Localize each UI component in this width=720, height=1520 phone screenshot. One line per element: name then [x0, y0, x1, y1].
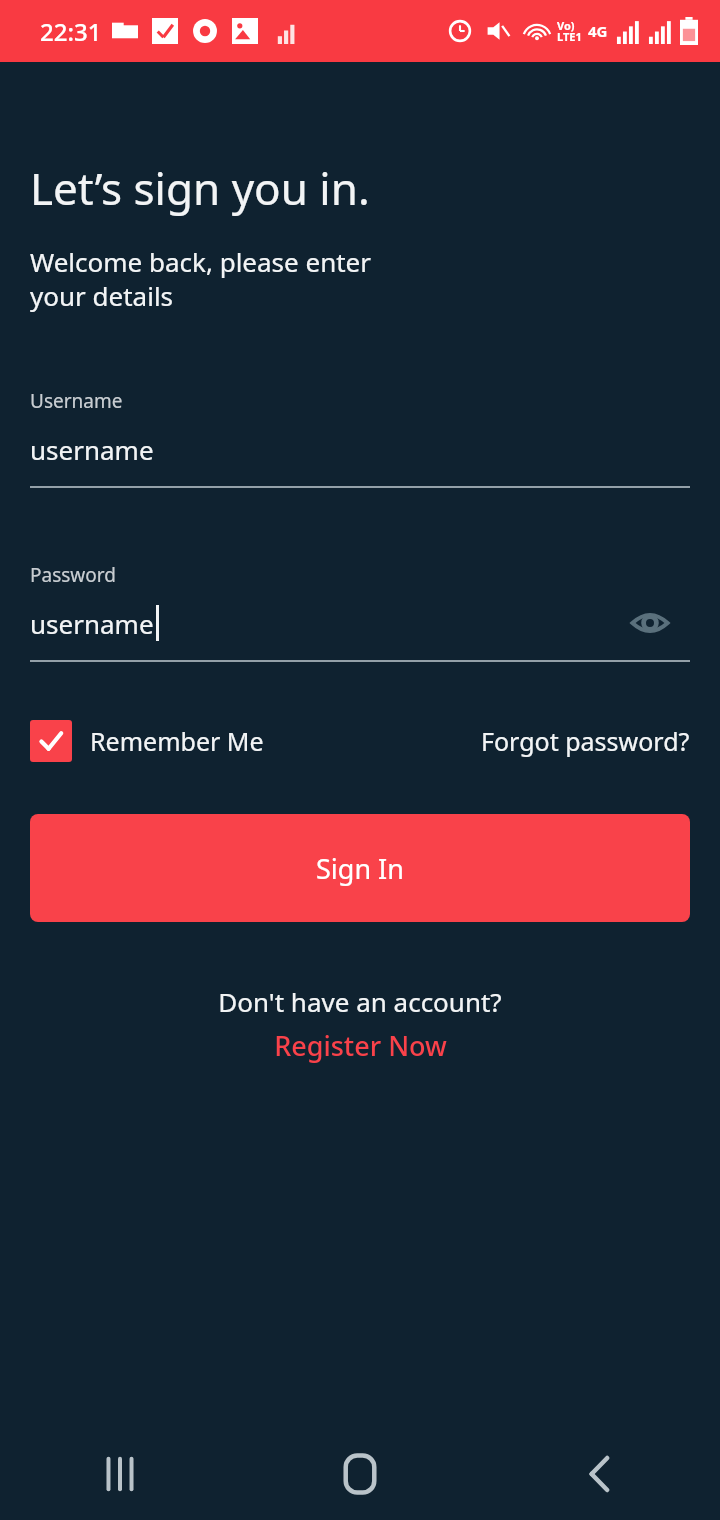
button[interactable]: Back: [480, 1428, 720, 1520]
button[interactable]: username: [0, 426, 720, 472]
button[interactable]: Recent apps: [0, 1428, 240, 1520]
staticText: 22:31: [40, 15, 102, 48]
staticText: Password: [30, 562, 116, 588]
staticText: Let’s sign you in.: [30, 158, 370, 218]
staticText: Remember Me: [90, 724, 264, 758]
staticText: Vo) LTE1: [557, 18, 582, 45]
button[interactable]: username: [0, 600, 720, 646]
button[interactable]: Remember Me: [30, 720, 264, 762]
staticText: Don't have an account?: [218, 984, 502, 1019]
staticText: Welcome back, please enter your details: [30, 244, 371, 314]
button[interactable]: Show password: [628, 601, 672, 645]
staticText: username: [30, 606, 154, 641]
button[interactable]: Home: [240, 1428, 480, 1520]
button[interactable]: Sign In: [30, 814, 690, 922]
button[interactable]: Forgot password?: [481, 724, 690, 758]
staticText: Sign In: [316, 850, 404, 887]
staticText: Username: [30, 388, 123, 414]
staticText: username: [30, 432, 154, 467]
staticText: Forgot password?: [481, 724, 690, 758]
staticText: Register Now: [274, 1027, 447, 1064]
button[interactable]: Register Now: [274, 1027, 447, 1064]
staticText: 4G: [588, 21, 608, 41]
